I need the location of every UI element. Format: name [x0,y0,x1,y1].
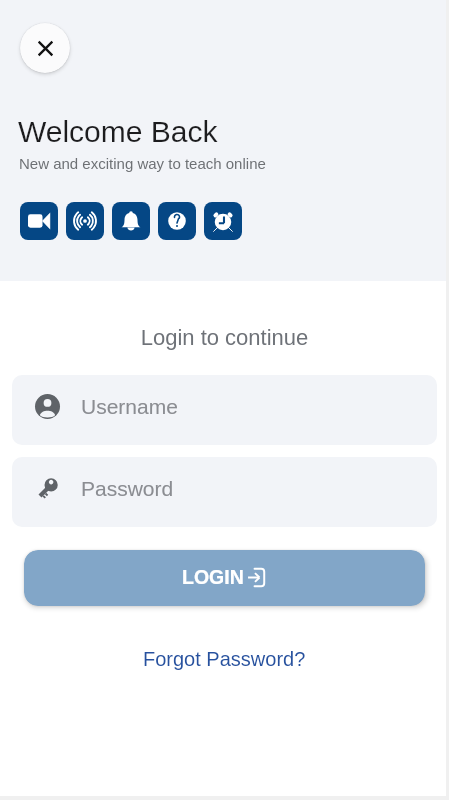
button[interactable]: LOGIN [24,550,425,606]
staticText: Password [81,477,174,500]
staticText: Login to continue [0,325,449,350]
button[interactable]: Alarm [204,202,242,240]
staticText: Forgot Password? [143,648,306,670]
staticText: Welcome Back [18,115,218,149]
button[interactable]: Video call [20,202,58,240]
staticText: New and exciting way to teach online [19,155,266,172]
button[interactable]: Notifications [112,202,150,240]
staticText: Username [81,395,178,418]
button[interactable]: Close [20,23,70,73]
staticText: LOGIN [182,566,244,588]
button[interactable]: Forgot Password? [135,645,314,673]
button[interactable]: Live broadcast [66,202,104,240]
button[interactable]: Help [158,202,196,240]
button[interactable]: Username [12,375,437,445]
button[interactable]: Password [12,457,437,527]
